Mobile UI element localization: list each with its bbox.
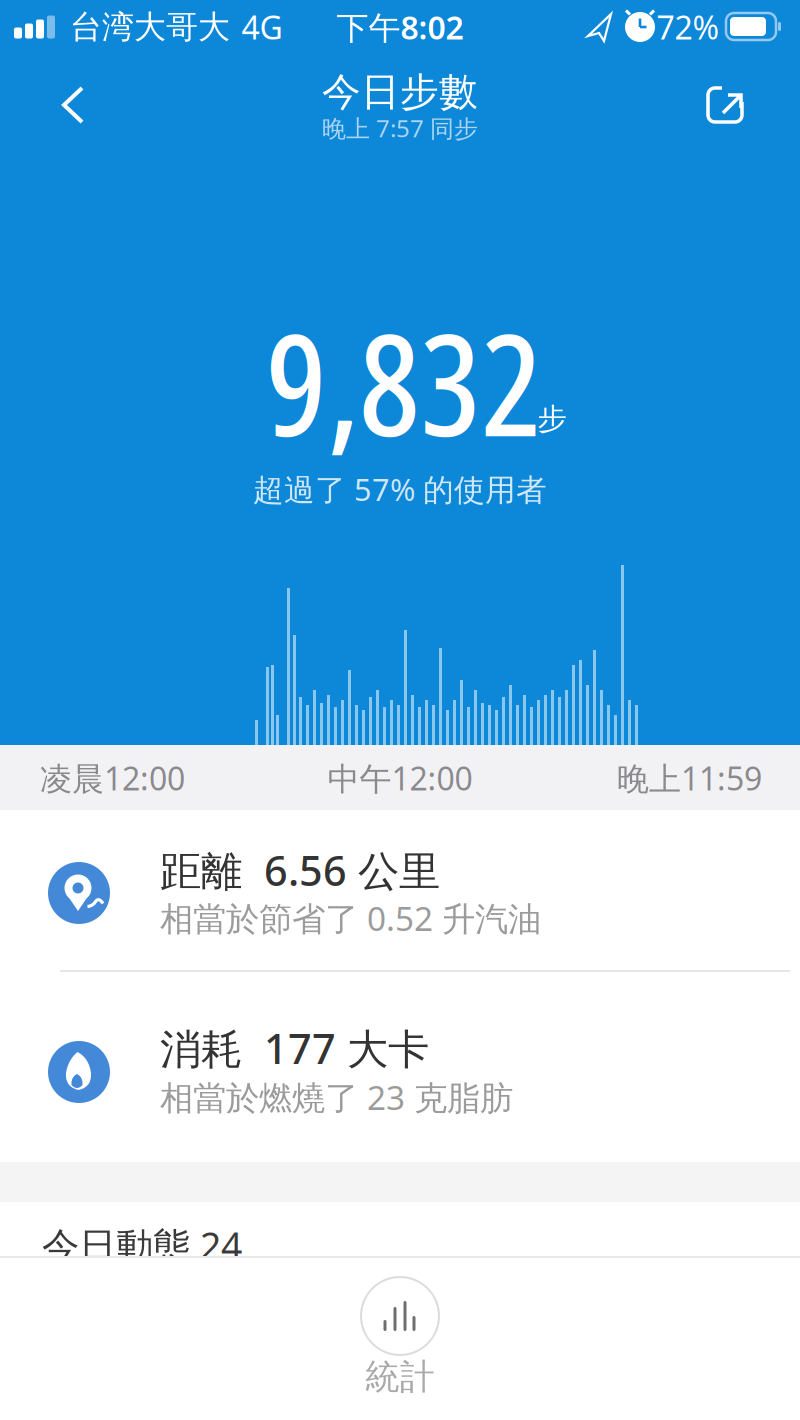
button[interactable]: 消耗 177 大卡 [0,972,800,1162]
staticText: 凌晨12:00 [40,757,185,799]
staticText: 9,832 [266,287,542,477]
staticText: 統計 [365,1356,435,1398]
staticText: 晚上 7:57 同步 [322,112,478,144]
staticText: 下午8:02 [336,6,463,48]
button[interactable]: 距離 6.56 公里 [0,810,800,972]
button[interactable] [697,77,753,133]
staticText: 今日步數 [322,68,478,116]
staticText: 相當於燃燒了 23 克脂肪 [160,1075,513,1119]
staticText: 晚上11:59 [617,757,762,799]
staticText: 72% [656,6,719,48]
staticText: 台湾大哥大 [70,7,230,47]
staticText: 4G [241,6,282,48]
staticText: 步 [537,401,566,437]
button[interactable]: 統計 [330,1251,470,1391]
staticText: 距離 6.56 公里 [160,843,440,897]
staticText: 消耗 177 大卡 [160,1021,429,1075]
staticText: 今日動態 24 [42,1220,242,1270]
staticText: 相當於節省了 0.52 升汽油 [160,896,541,940]
button[interactable] [49,83,99,127]
staticText: 超過了 57% 的使用者 [253,469,547,509]
staticText: 中午12:00 [327,757,472,799]
